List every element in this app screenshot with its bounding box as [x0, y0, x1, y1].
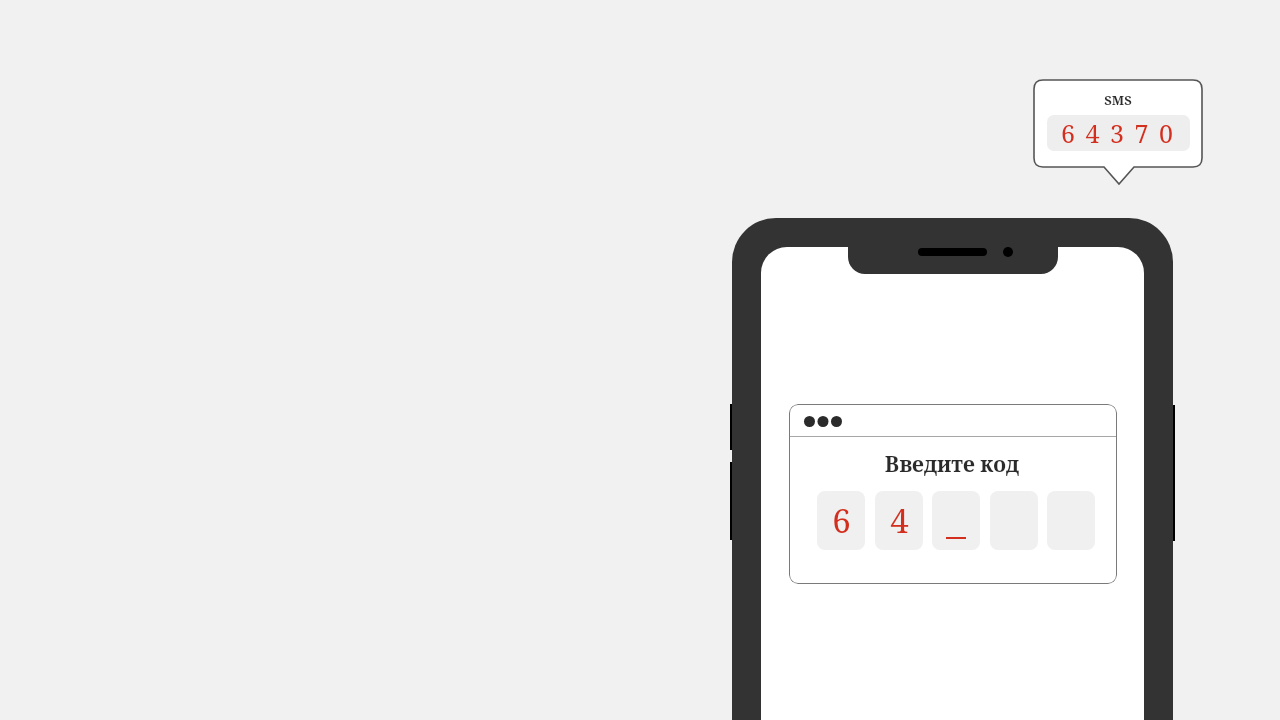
button[interactable]: SMS with verification code — [1034, 80, 1202, 184]
staticText: Введите код — [789, 450, 1115, 480]
staticText: 6 — [832, 498, 851, 543]
button[interactable]: Code digit 1 — [817, 491, 865, 550]
button[interactable]: Code digit 2 — [875, 491, 923, 550]
staticText: 4 — [890, 498, 909, 543]
staticText: SMS — [1034, 91, 1202, 109]
button[interactable]: Code digit 3 — [932, 491, 980, 550]
staticText: 6 4 3 7 0 — [1034, 116, 1202, 150]
button[interactable]: Window controls — [804, 416, 842, 427]
